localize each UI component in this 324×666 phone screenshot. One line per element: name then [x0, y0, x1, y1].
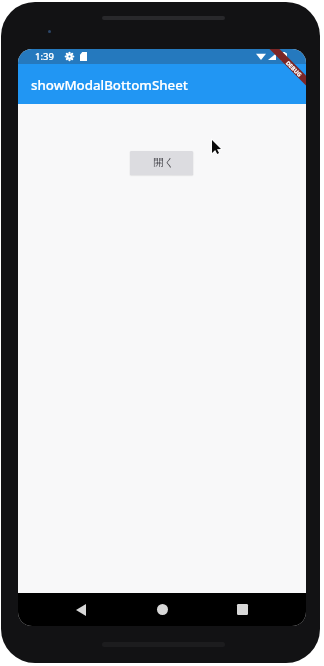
staticText: 開く [153, 156, 175, 170]
staticText: showModalBottomSheet [31, 76, 188, 94]
button[interactable]: Recent apps [225, 593, 259, 626]
button[interactable]: 開く [130, 151, 193, 175]
button[interactable]: Home [145, 593, 179, 626]
staticText: 1:39 [35, 50, 54, 63]
button[interactable]: Back [64, 593, 98, 626]
staticText: DEBUG [284, 59, 303, 79]
